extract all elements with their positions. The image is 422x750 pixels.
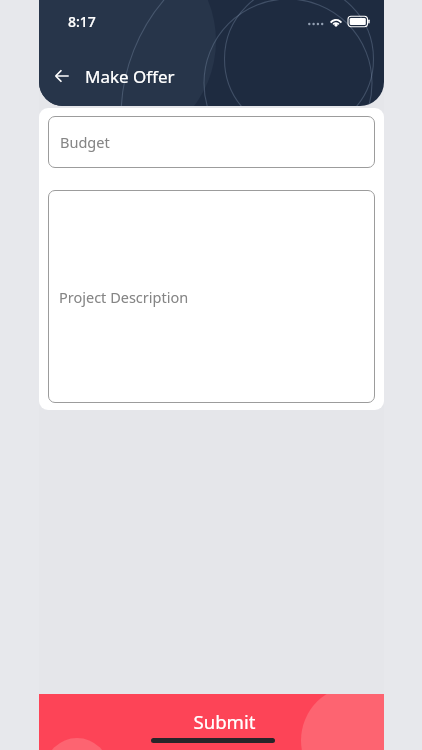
button[interactable]: Project Description	[48, 190, 375, 403]
button[interactable]: Submit	[39, 694, 384, 750]
button[interactable]: Back	[45, 59, 79, 93]
staticText: Make Offer	[85, 65, 175, 88]
button[interactable]: Budget	[48, 116, 375, 168]
staticText: Budget	[60, 132, 110, 152]
staticText: Project Description	[59, 287, 189, 307]
staticText: Submit	[193, 709, 256, 734]
staticText: 8:17	[68, 12, 96, 31]
